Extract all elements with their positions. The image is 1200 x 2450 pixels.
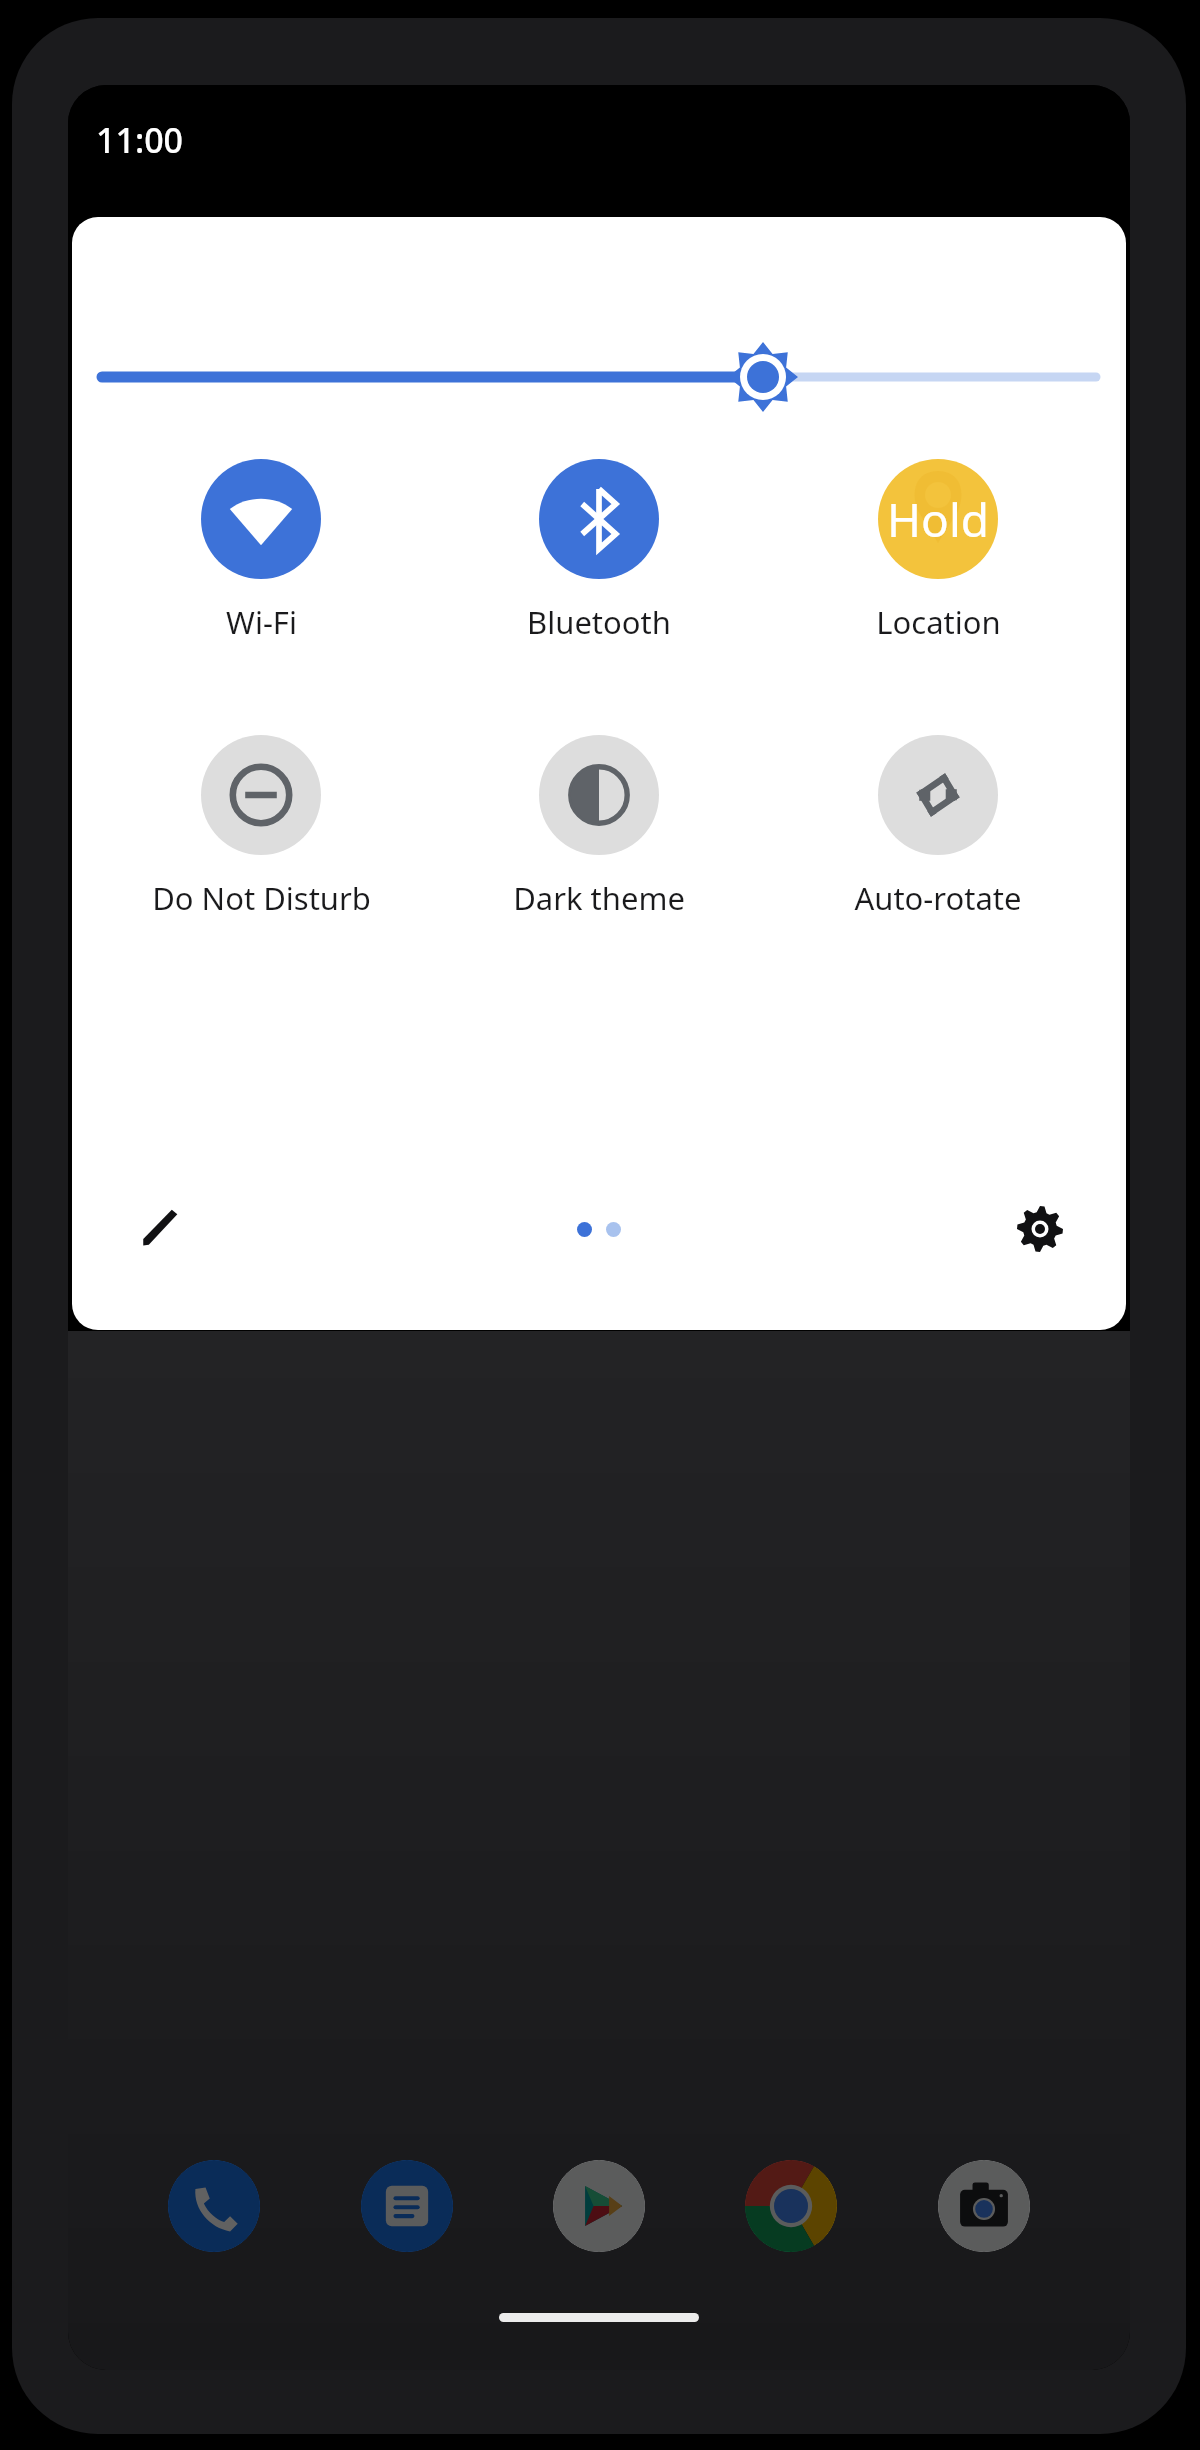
staticText: Hold <box>887 488 990 551</box>
button[interactable]: App <box>553 2160 645 2252</box>
staticText: Do Not Disturb <box>152 877 371 919</box>
button[interactable]: Auto-rotate <box>788 735 1088 919</box>
button[interactable]: Wi-Fi <box>111 459 411 643</box>
button[interactable]: App <box>361 2160 453 2252</box>
staticText: 11:00 <box>96 117 184 163</box>
button[interactable]: Edit <box>126 1197 190 1261</box>
button[interactable]: Bluetooth <box>449 459 749 643</box>
staticText: Wi-Fi <box>226 601 297 643</box>
staticText: Bluetooth <box>527 601 671 643</box>
button[interactable]: Brightness <box>72 339 1126 415</box>
staticText: Location <box>876 601 1001 643</box>
button[interactable]: Hold <box>788 459 1088 643</box>
button[interactable]: Dark theme <box>449 735 749 919</box>
staticText: Auto-rotate <box>854 877 1022 919</box>
button[interactable]: App <box>938 2160 1030 2252</box>
button[interactable]: App <box>745 2160 837 2252</box>
staticText: Dark theme <box>513 877 685 919</box>
button[interactable]: Do Not Disturb <box>111 735 411 919</box>
button[interactable]: App <box>168 2160 260 2252</box>
button[interactable]: Settings <box>1008 1197 1072 1261</box>
